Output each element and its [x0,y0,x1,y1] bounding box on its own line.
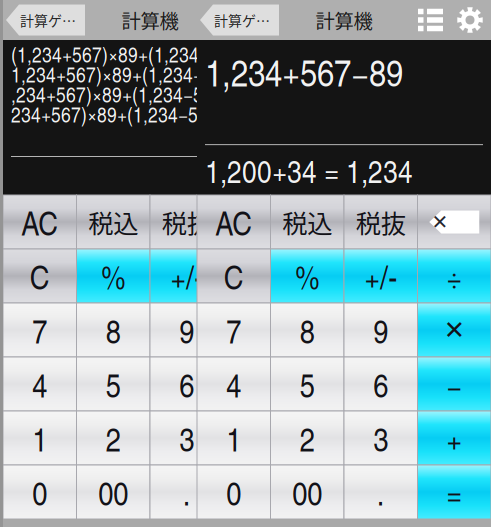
button[interactable]: ÷ [223,249,297,303]
button[interactable]: 2 [270,411,344,465]
staticText: 1 [226,415,241,461]
staticText: = [446,469,462,515]
staticText: . [377,469,385,515]
button[interactable]: 計算ゲーム [200,4,279,35]
button[interactable]: C [197,249,270,303]
button[interactable]: 3 [150,411,223,465]
button[interactable]: % [76,249,150,303]
staticText: 1 [32,415,47,461]
button[interactable]: AC [3,195,76,249]
button[interactable]: +/- [344,249,417,303]
staticText: AC [215,199,252,245]
button[interactable]: 5 [270,357,344,411]
button[interactable]: 6 [344,357,417,411]
button[interactable]: Settings [263,7,289,33]
staticText: 0 [226,469,241,515]
button[interactable]: 3 [344,411,417,465]
staticText: 6 [179,361,194,407]
staticText: 8 [106,307,121,353]
staticText: (1,234+567)×89+(1,234−56 [11,39,229,69]
button[interactable]: 9 [150,303,223,357]
staticText: − [446,361,462,407]
staticText: 1,200+34 = 1,234 [205,148,413,192]
button[interactable]: 0 [3,465,76,519]
staticText: +/- [170,253,203,299]
button[interactable]: 5 [76,357,150,411]
staticText: 234+567)×89+(1,234−567)× [11,99,234,129]
staticText: ✕ [237,210,254,234]
button[interactable]: 税抜 [150,195,223,249]
button[interactable]: 税込 [270,195,344,249]
button[interactable]: 6 [150,357,223,411]
button[interactable]: − [223,357,297,411]
button[interactable]: 4 [197,357,270,411]
staticText: − [252,361,268,407]
staticText: C [224,253,244,299]
staticText: 7 [226,307,241,353]
button[interactable]: 00 [270,465,344,519]
button[interactable]: = [417,465,491,519]
staticText: ✕ [250,315,271,345]
staticText: + [252,415,268,461]
button[interactable]: 8 [76,303,150,357]
staticText: 計算ゲーム [214,10,271,30]
button[interactable]: 税込 [76,195,150,249]
button[interactable]: 1 [197,411,270,465]
staticText: 1,234+567)×89+(1,234−567 [11,59,233,89]
button[interactable]: 計算ゲーム [6,4,85,35]
staticText: 7 [32,307,47,353]
button[interactable]: Delete [417,195,491,249]
button[interactable]: . [150,465,223,519]
staticText: ✕ [444,315,465,345]
button[interactable]: Settings [457,7,483,33]
button[interactable]: ✕ [417,303,491,357]
button[interactable]: ✕ [223,303,297,357]
button[interactable]: 4 [3,357,76,411]
button[interactable]: . [344,465,417,519]
button[interactable]: History [224,9,249,31]
button[interactable]: 9 [344,303,417,357]
staticText: 計算機 [315,6,372,34]
button[interactable]: AC [197,195,270,249]
staticText: . [183,469,191,515]
button[interactable]: 2 [76,411,150,465]
staticText: 2 [300,415,315,461]
button[interactable]: + [417,411,491,465]
button[interactable]: = [223,465,297,519]
staticText: 2 [106,415,121,461]
staticText: 9 [179,307,194,353]
button[interactable]: 7 [3,303,76,357]
staticText: ✕ [431,210,448,234]
button[interactable]: 0 [197,465,270,519]
button[interactable]: 7 [197,303,270,357]
staticText: C [30,253,50,299]
staticText: 3 [179,415,194,461]
button[interactable]: − [417,357,491,411]
staticText: = [252,469,268,515]
staticText: 計算機 [121,6,178,34]
staticText: 税抜 [356,204,406,240]
staticText: 計算ゲーム [20,10,77,30]
button[interactable]: % [270,249,344,303]
staticText: 1,234+567−89 [205,45,403,97]
staticText: % [295,253,319,299]
staticText: AC [21,199,58,245]
staticText: ÷ [446,253,462,299]
staticText: 5 [300,361,315,407]
button[interactable]: 00 [76,465,150,519]
staticText: 00 [292,469,322,515]
staticText: 8 [300,307,315,353]
button[interactable]: 1 [3,411,76,465]
button[interactable]: 8 [270,303,344,357]
button[interactable]: C [3,249,76,303]
button[interactable]: History [418,9,443,31]
button[interactable]: 税抜 [344,195,417,249]
button[interactable]: ÷ [417,249,491,303]
button[interactable]: Delete [223,195,297,249]
staticText: 税抜 [162,204,212,240]
button[interactable]: +/- [150,249,223,303]
staticText: 9 [373,307,388,353]
staticText: 3 [373,415,388,461]
staticText: % [101,253,125,299]
button[interactable]: + [223,411,297,465]
